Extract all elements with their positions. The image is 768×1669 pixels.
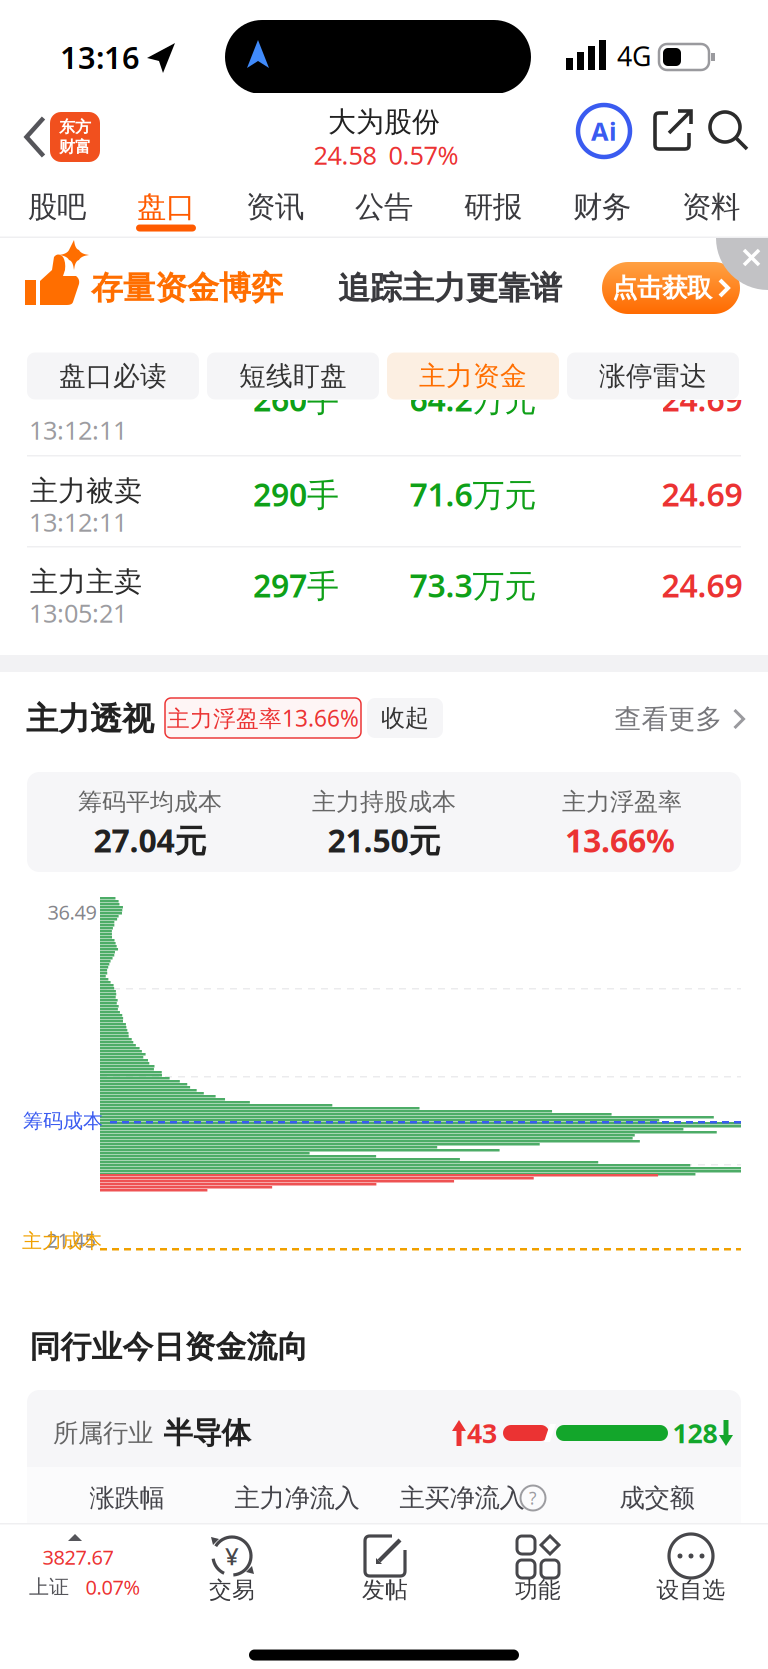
staticText: 大为股份 (328, 105, 440, 139)
button[interactable]: 分享 (651, 109, 693, 151)
staticText: 查看更多 (614, 703, 722, 735)
staticText: 主力净流入 (234, 1482, 359, 1513)
button[interactable]: 研报 (462, 179, 524, 235)
button[interactable]: 返回 (25, 118, 44, 156)
button[interactable]: 盘口 (135, 179, 197, 235)
staticText: 0.07% (85, 1574, 140, 1600)
staticText: 功能 (515, 1576, 561, 1604)
staticText: 成交额 (619, 1482, 694, 1513)
button[interactable]: 主力资金 (387, 352, 559, 399)
button[interactable]: 查看更多 (614, 703, 745, 735)
staticText: 涨跌幅 (89, 1482, 164, 1513)
button[interactable]: 涨停雷达 (567, 352, 739, 399)
staticText: 73.3万元 (409, 564, 536, 606)
staticText: 财富 (59, 137, 91, 157)
button[interactable]: 收起 (367, 698, 443, 738)
button[interactable]: 3827.67 (5, 1528, 155, 1620)
staticText: 主买净流入 (399, 1482, 524, 1513)
staticText: 290手 (253, 473, 339, 515)
button[interactable]: 资讯 (244, 179, 306, 235)
staticText: Ai (591, 114, 617, 148)
button[interactable]: 公告 (353, 179, 415, 235)
staticText: 13:05:21 (29, 596, 127, 630)
staticText: 24.69 (661, 473, 742, 515)
button[interactable]: 交易 (172, 1528, 292, 1620)
staticText: ? (529, 1486, 537, 1509)
staticText: 存量资金博弈 (91, 268, 283, 308)
staticText: 筹码成本 (23, 1109, 103, 1133)
staticText: 追踪主力更靠谱 (338, 268, 562, 308)
staticText: 21.45 (46, 1227, 95, 1253)
staticText: 13:16 (60, 37, 140, 77)
staticText: 同行业今日资金流向 (29, 1328, 308, 1366)
staticText: 4G (617, 38, 651, 74)
button[interactable]: 东方财富 (50, 112, 100, 162)
staticText: 13:12:11 (29, 505, 127, 539)
staticText: 资讯 (246, 189, 304, 225)
staticText: 上证 (29, 1575, 69, 1599)
staticText: 24.69 (661, 378, 742, 420)
staticText: 27.04元 (93, 819, 206, 861)
staticText: 半导体 (163, 1415, 250, 1451)
staticText: 43 (467, 1415, 497, 1451)
staticText: 所属行业 (53, 1417, 153, 1448)
staticText: 公告 (355, 189, 413, 225)
button[interactable]: 发帖 (324, 1528, 446, 1620)
staticText: 筹码平均成本 (78, 787, 222, 817)
staticText: 主力成本 (22, 1229, 102, 1253)
staticText: 297手 (253, 564, 339, 606)
staticText: 发帖 (362, 1576, 408, 1604)
staticText: 260手 (253, 378, 339, 420)
staticText: 研报 (464, 189, 522, 225)
staticText: 3827.67 (42, 1544, 113, 1570)
staticText: 股吧 (28, 189, 86, 225)
staticText: 财务 (573, 189, 631, 225)
staticText: ¥ (225, 1540, 239, 1572)
staticText: 36.49 (47, 899, 96, 925)
staticText: 64.2万元 (409, 378, 536, 420)
staticText: 收起 (381, 703, 429, 733)
staticText: 涨停雷达 (599, 360, 707, 392)
staticText: 13.66% (565, 819, 675, 861)
staticText: 主力浮盈率 (562, 787, 682, 817)
staticText: 设自选 (656, 1576, 725, 1604)
button[interactable]: 关闭 (712, 238, 768, 290)
staticText: 24.69 (661, 564, 742, 606)
staticText: 0.57% (388, 138, 458, 172)
button[interactable]: 点击获取 (602, 262, 740, 314)
staticText: 短线盯盘 (239, 360, 347, 392)
staticText: 主力透视 (26, 699, 154, 739)
button[interactable]: 设自选 (617, 1528, 765, 1620)
button[interactable]: 资料 (680, 179, 742, 235)
button[interactable]: 短线盯盘 (207, 352, 379, 399)
staticText: 24.58 (313, 138, 376, 172)
staticText: 13:12:11 (29, 413, 127, 447)
staticText: 主力主卖 (30, 565, 142, 599)
staticText: 资料 (682, 189, 740, 225)
staticText: 主力资金 (419, 360, 527, 392)
button[interactable]: 盘口必读 (27, 352, 199, 399)
staticText: 点击获取 (612, 272, 712, 303)
staticText: 主力持股成本 (312, 787, 456, 817)
staticText: 主力被卖 (30, 474, 142, 508)
button[interactable]: 搜索 (708, 110, 750, 152)
button[interactable]: 主买净流入说明 (520, 1485, 545, 1510)
staticText: 主力浮盈率13.66% (167, 703, 359, 733)
staticText: 盘口 (137, 189, 195, 225)
staticText: 71.6万元 (409, 473, 536, 515)
button[interactable]: 功能 (473, 1528, 603, 1620)
button[interactable]: 财务 (571, 179, 633, 235)
button[interactable]: 股吧 (26, 179, 88, 235)
button[interactable]: AI助手 (578, 105, 630, 157)
staticText: 21.50元 (327, 819, 440, 861)
staticText: 盘口必读 (59, 360, 167, 392)
staticText: 东方 (59, 117, 91, 137)
staticText: 128 (672, 1415, 717, 1451)
staticText: 交易 (209, 1576, 255, 1604)
